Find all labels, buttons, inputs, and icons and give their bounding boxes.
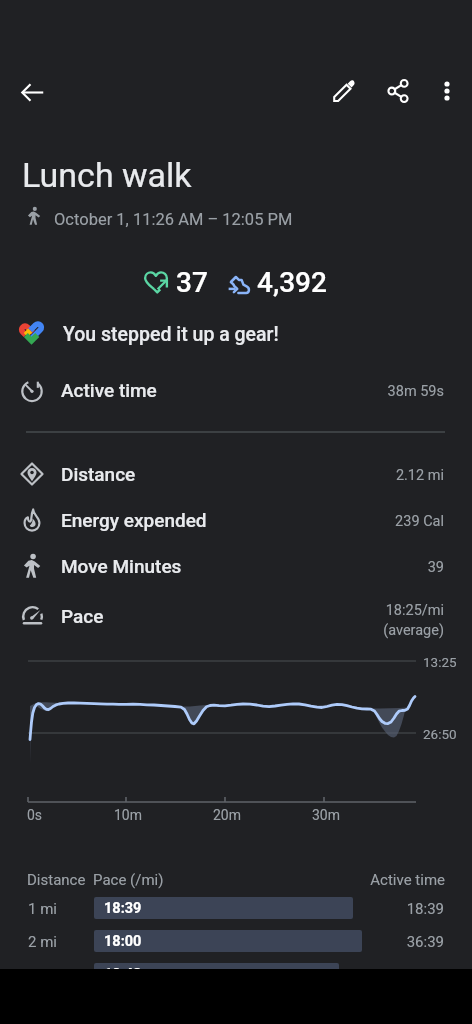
staticText: 18:00 (104, 933, 142, 950)
staticText: 0s (27, 807, 43, 823)
button[interactable]: Move Minutes (0, 543, 472, 589)
button[interactable]: Distance (0, 451, 472, 497)
button[interactable]: Active time (0, 367, 472, 413)
staticText: 38m 59s (387, 383, 444, 400)
staticText: 0.12 mi (28, 966, 78, 984)
staticText: 18:39 (344, 900, 444, 918)
staticText: Active time (61, 379, 157, 401)
staticText: You stepped it up a gear! (63, 323, 279, 346)
staticText: 36:39 (344, 933, 444, 951)
staticText: Active time (300, 871, 445, 889)
staticText: 2 mi (28, 933, 57, 951)
staticText: 1 mi (28, 900, 57, 918)
staticText: 239 Cal (395, 513, 444, 530)
staticText: 26:50 (423, 726, 457, 742)
staticText: Energy expended (61, 509, 207, 531)
staticText: 30m (312, 807, 341, 823)
staticText: October 1, 11:26 AM – 12:05 PM (54, 210, 293, 229)
staticText: 4,392 (257, 266, 327, 299)
staticText: 2.12 mi (395, 467, 444, 484)
staticText: Move Minutes (61, 555, 182, 577)
staticText: 18:25/mi (385, 602, 444, 619)
button[interactable]: Back (8, 68, 56, 116)
button[interactable]: More options (423, 67, 471, 115)
staticText: Pace (61, 605, 104, 627)
staticText: (average) (383, 622, 444, 639)
staticText: 38:59 (344, 966, 444, 984)
button[interactable]: Energy expended (0, 497, 472, 543)
staticText: 39 (427, 559, 444, 576)
staticText: Distance (27, 871, 86, 889)
staticText: 37 (176, 266, 208, 299)
button[interactable]: Pace (0, 593, 472, 639)
button[interactable]: Edit (320, 67, 368, 115)
staticText: 20m (213, 807, 242, 823)
staticText: Distance (61, 463, 136, 485)
staticText: 18:42 (104, 966, 142, 983)
staticText: Pace (/mi) (93, 871, 164, 889)
staticText: 10m (114, 807, 143, 823)
staticText: 18:39 (104, 900, 142, 917)
staticText: Lunch walk (22, 155, 192, 195)
button[interactable]: You stepped it up a gear! (0, 312, 472, 356)
staticText: 13:25 (423, 654, 457, 670)
button[interactable]: Share (374, 67, 422, 115)
